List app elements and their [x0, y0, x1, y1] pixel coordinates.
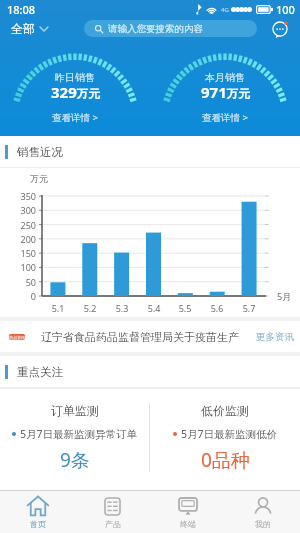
staticText: 50 [13, 276, 36, 288]
staticText: 首页 [30, 519, 46, 529]
staticText: 18:08 [7, 2, 36, 17]
staticText: 0品种 [201, 447, 250, 472]
staticText: 100 [276, 2, 295, 17]
staticText: 终端 [180, 519, 196, 529]
staticText: 辽宁省食品药品监督管理局关于疫苗生产 [41, 330, 239, 344]
staticText: 5.3 [111, 302, 133, 314]
staticText: 9条 [60, 447, 90, 472]
button[interactable]: 查看详情 > [194, 109, 256, 126]
button[interactable]: 低价监测 [150, 389, 300, 472]
staticText: 昨日销售 [55, 71, 95, 84]
staticText: 销售近况 [17, 145, 63, 159]
button[interactable]: 全部 [7, 19, 52, 38]
staticText: 350 [13, 190, 36, 202]
staticText: 低价监测 [201, 403, 249, 418]
staticText: 重点关注 [17, 365, 63, 379]
button[interactable]: 我的 [225, 491, 300, 533]
staticText: 200 [13, 233, 36, 245]
button[interactable]: 消息 [269, 19, 291, 41]
staticText: 5.1 [47, 302, 69, 314]
staticText: 万元 [30, 173, 48, 184]
staticText: 329万元 [51, 82, 100, 102]
staticText: 5月7日最新监测异常订单 [20, 427, 138, 441]
staticText: 5.4 [143, 302, 165, 314]
staticText: 4G [221, 6, 229, 14]
button[interactable]: 更多资讯 [256, 331, 294, 343]
button[interactable]: 产品 [75, 491, 150, 533]
staticText: 5月7日最新监测低价 [181, 427, 278, 441]
staticText: 150 [13, 247, 36, 259]
staticText: 本月销售 [205, 71, 245, 84]
staticText: 5.7 [238, 302, 260, 314]
button[interactable]: 热点资讯 [0, 321, 300, 352]
staticText: 300 [13, 204, 36, 216]
staticText: 请输入您要搜索的内容 [108, 23, 203, 35]
staticText: 971万元 [201, 82, 250, 102]
staticText: 订单监测 [51, 403, 99, 418]
staticText: 我的 [255, 519, 271, 529]
button[interactable]: 首页 [0, 491, 75, 533]
staticText: 5.6 [206, 302, 228, 314]
staticText: 250 [13, 219, 36, 231]
staticText: 5.2 [79, 302, 101, 314]
staticText: 全部 [11, 21, 35, 36]
button[interactable]: 请输入您要搜索的内容 [84, 20, 257, 37]
staticText: 产品 [105, 519, 121, 529]
button[interactable]: 终端 [150, 491, 225, 533]
staticText: 0 [13, 290, 36, 302]
button[interactable]: 订单监测 [0, 389, 149, 472]
staticText: 100 [13, 261, 36, 273]
staticText: 热点资讯 [9, 335, 25, 340]
staticText: 5月 [277, 290, 292, 302]
staticText: 5.5 [174, 302, 196, 314]
button[interactable]: 查看详情 > [44, 109, 106, 126]
